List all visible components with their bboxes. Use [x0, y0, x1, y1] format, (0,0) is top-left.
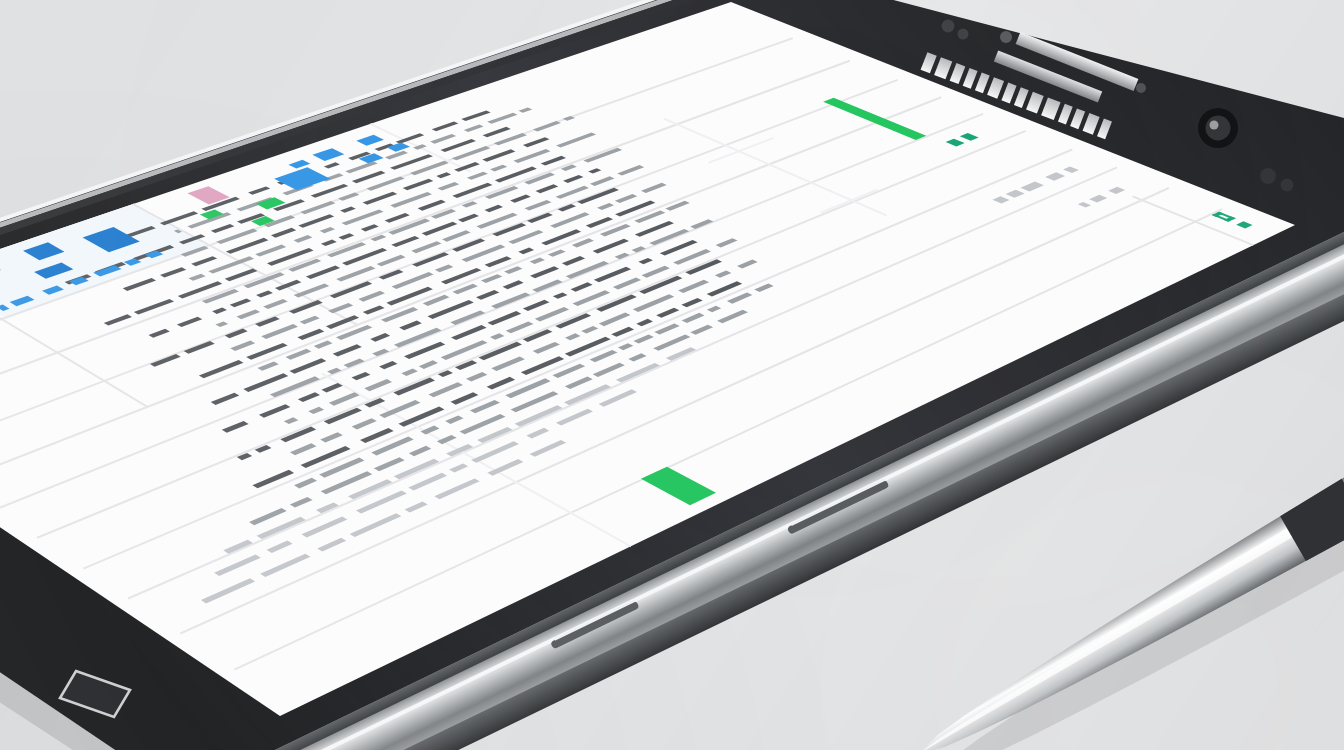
button[interactable]: S Pen slot: [500, 560, 720, 680]
button[interactable]: Home: [40, 650, 150, 740]
button[interactable]: Battery usage progress: [760, 60, 990, 170]
button[interactable]: Battery level 10 percent: [1140, 180, 1290, 270]
button[interactable]: Quick settings tiles: [0, 210, 300, 330]
button[interactable]: Storage progress: [600, 430, 750, 530]
